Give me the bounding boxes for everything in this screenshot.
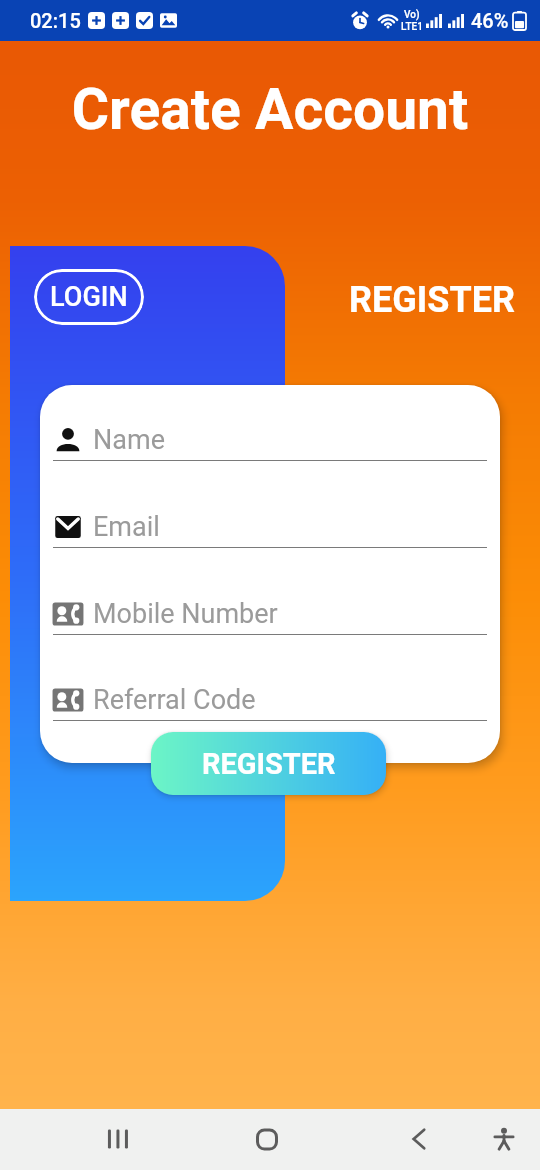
button[interactable]: REGISTER <box>151 732 386 795</box>
staticText: REGISTER <box>349 279 515 321</box>
button[interactable]: Mobile Number <box>53 595 500 632</box>
staticText: 02:15 <box>30 9 81 32</box>
button[interactable]: Name <box>53 421 500 458</box>
button[interactable]: LOGIN <box>34 269 144 325</box>
staticText: Referral Code <box>93 684 256 716</box>
staticText: Vo) <box>404 9 420 21</box>
button[interactable]: Accessibility <box>477 1112 531 1166</box>
button[interactable]: REGISTER <box>342 276 522 324</box>
button[interactable]: Home <box>240 1112 294 1166</box>
staticText: LOGIN <box>50 281 128 313</box>
staticText: Mobile Number <box>93 598 278 630</box>
staticText: Email <box>93 511 160 543</box>
staticText: REGISTER <box>202 747 336 781</box>
button[interactable]: Back <box>392 1112 446 1166</box>
staticText: Create Account <box>0 76 540 143</box>
button[interactable]: Referral Code <box>53 681 500 718</box>
button[interactable]: Recent apps <box>89 1112 143 1166</box>
button[interactable]: Email <box>53 508 500 545</box>
staticText: 46% <box>471 9 509 32</box>
staticText: LTE1 <box>401 21 423 33</box>
staticText: Name <box>93 424 165 456</box>
